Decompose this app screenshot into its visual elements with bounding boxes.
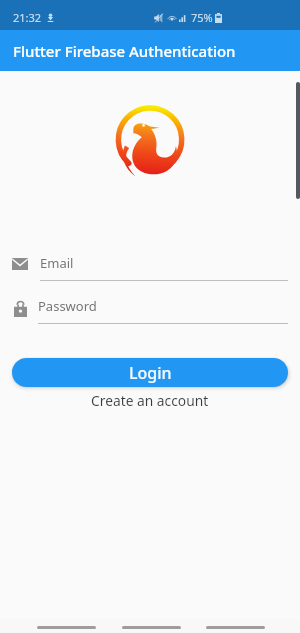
button[interactable]: Back [37,622,96,632]
button[interactable]: Home [122,622,181,632]
button[interactable]: Create an account [85,389,215,412]
button[interactable]: Recents [206,622,265,632]
staticText: Flutter Firebase Authentication [13,41,236,61]
staticText: Email [40,254,74,272]
staticText: Create an account [91,391,209,410]
staticText: 75% [191,10,213,25]
staticText: Password [38,297,97,315]
staticText: 21:32 [13,10,42,25]
staticText: Login [129,362,172,384]
button[interactable]: Login [12,358,288,387]
